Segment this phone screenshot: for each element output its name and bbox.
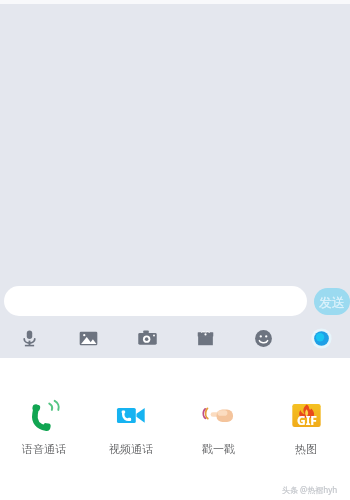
- staticText: 语音通话: [22, 442, 66, 456]
- staticText: 头条 @热褶hyh: [282, 484, 338, 495]
- button[interactable]: Gift: [176, 319, 234, 358]
- button[interactable]: 语音通话: [0, 399, 87, 456]
- staticText: 视频通话: [109, 442, 153, 456]
- button[interactable]: 戳一戳: [174, 399, 262, 456]
- staticText: 热图: [295, 442, 317, 456]
- staticText: 发送: [319, 294, 345, 310]
- button[interactable]: Photo: [59, 319, 118, 358]
- button[interactable]: GIF: [262, 399, 350, 456]
- button[interactable]: 视频通话: [87, 399, 174, 456]
- button[interactable]: More: [292, 319, 350, 358]
- staticText: 戳一戳: [202, 442, 235, 456]
- staticText: GIF: [297, 412, 317, 428]
- button[interactable]: Message input: [4, 286, 307, 316]
- button[interactable]: Emoji: [234, 319, 292, 358]
- button[interactable]: Camera: [118, 319, 176, 358]
- button[interactable]: 发送: [314, 288, 350, 315]
- button[interactable]: Voice message: [0, 319, 59, 358]
